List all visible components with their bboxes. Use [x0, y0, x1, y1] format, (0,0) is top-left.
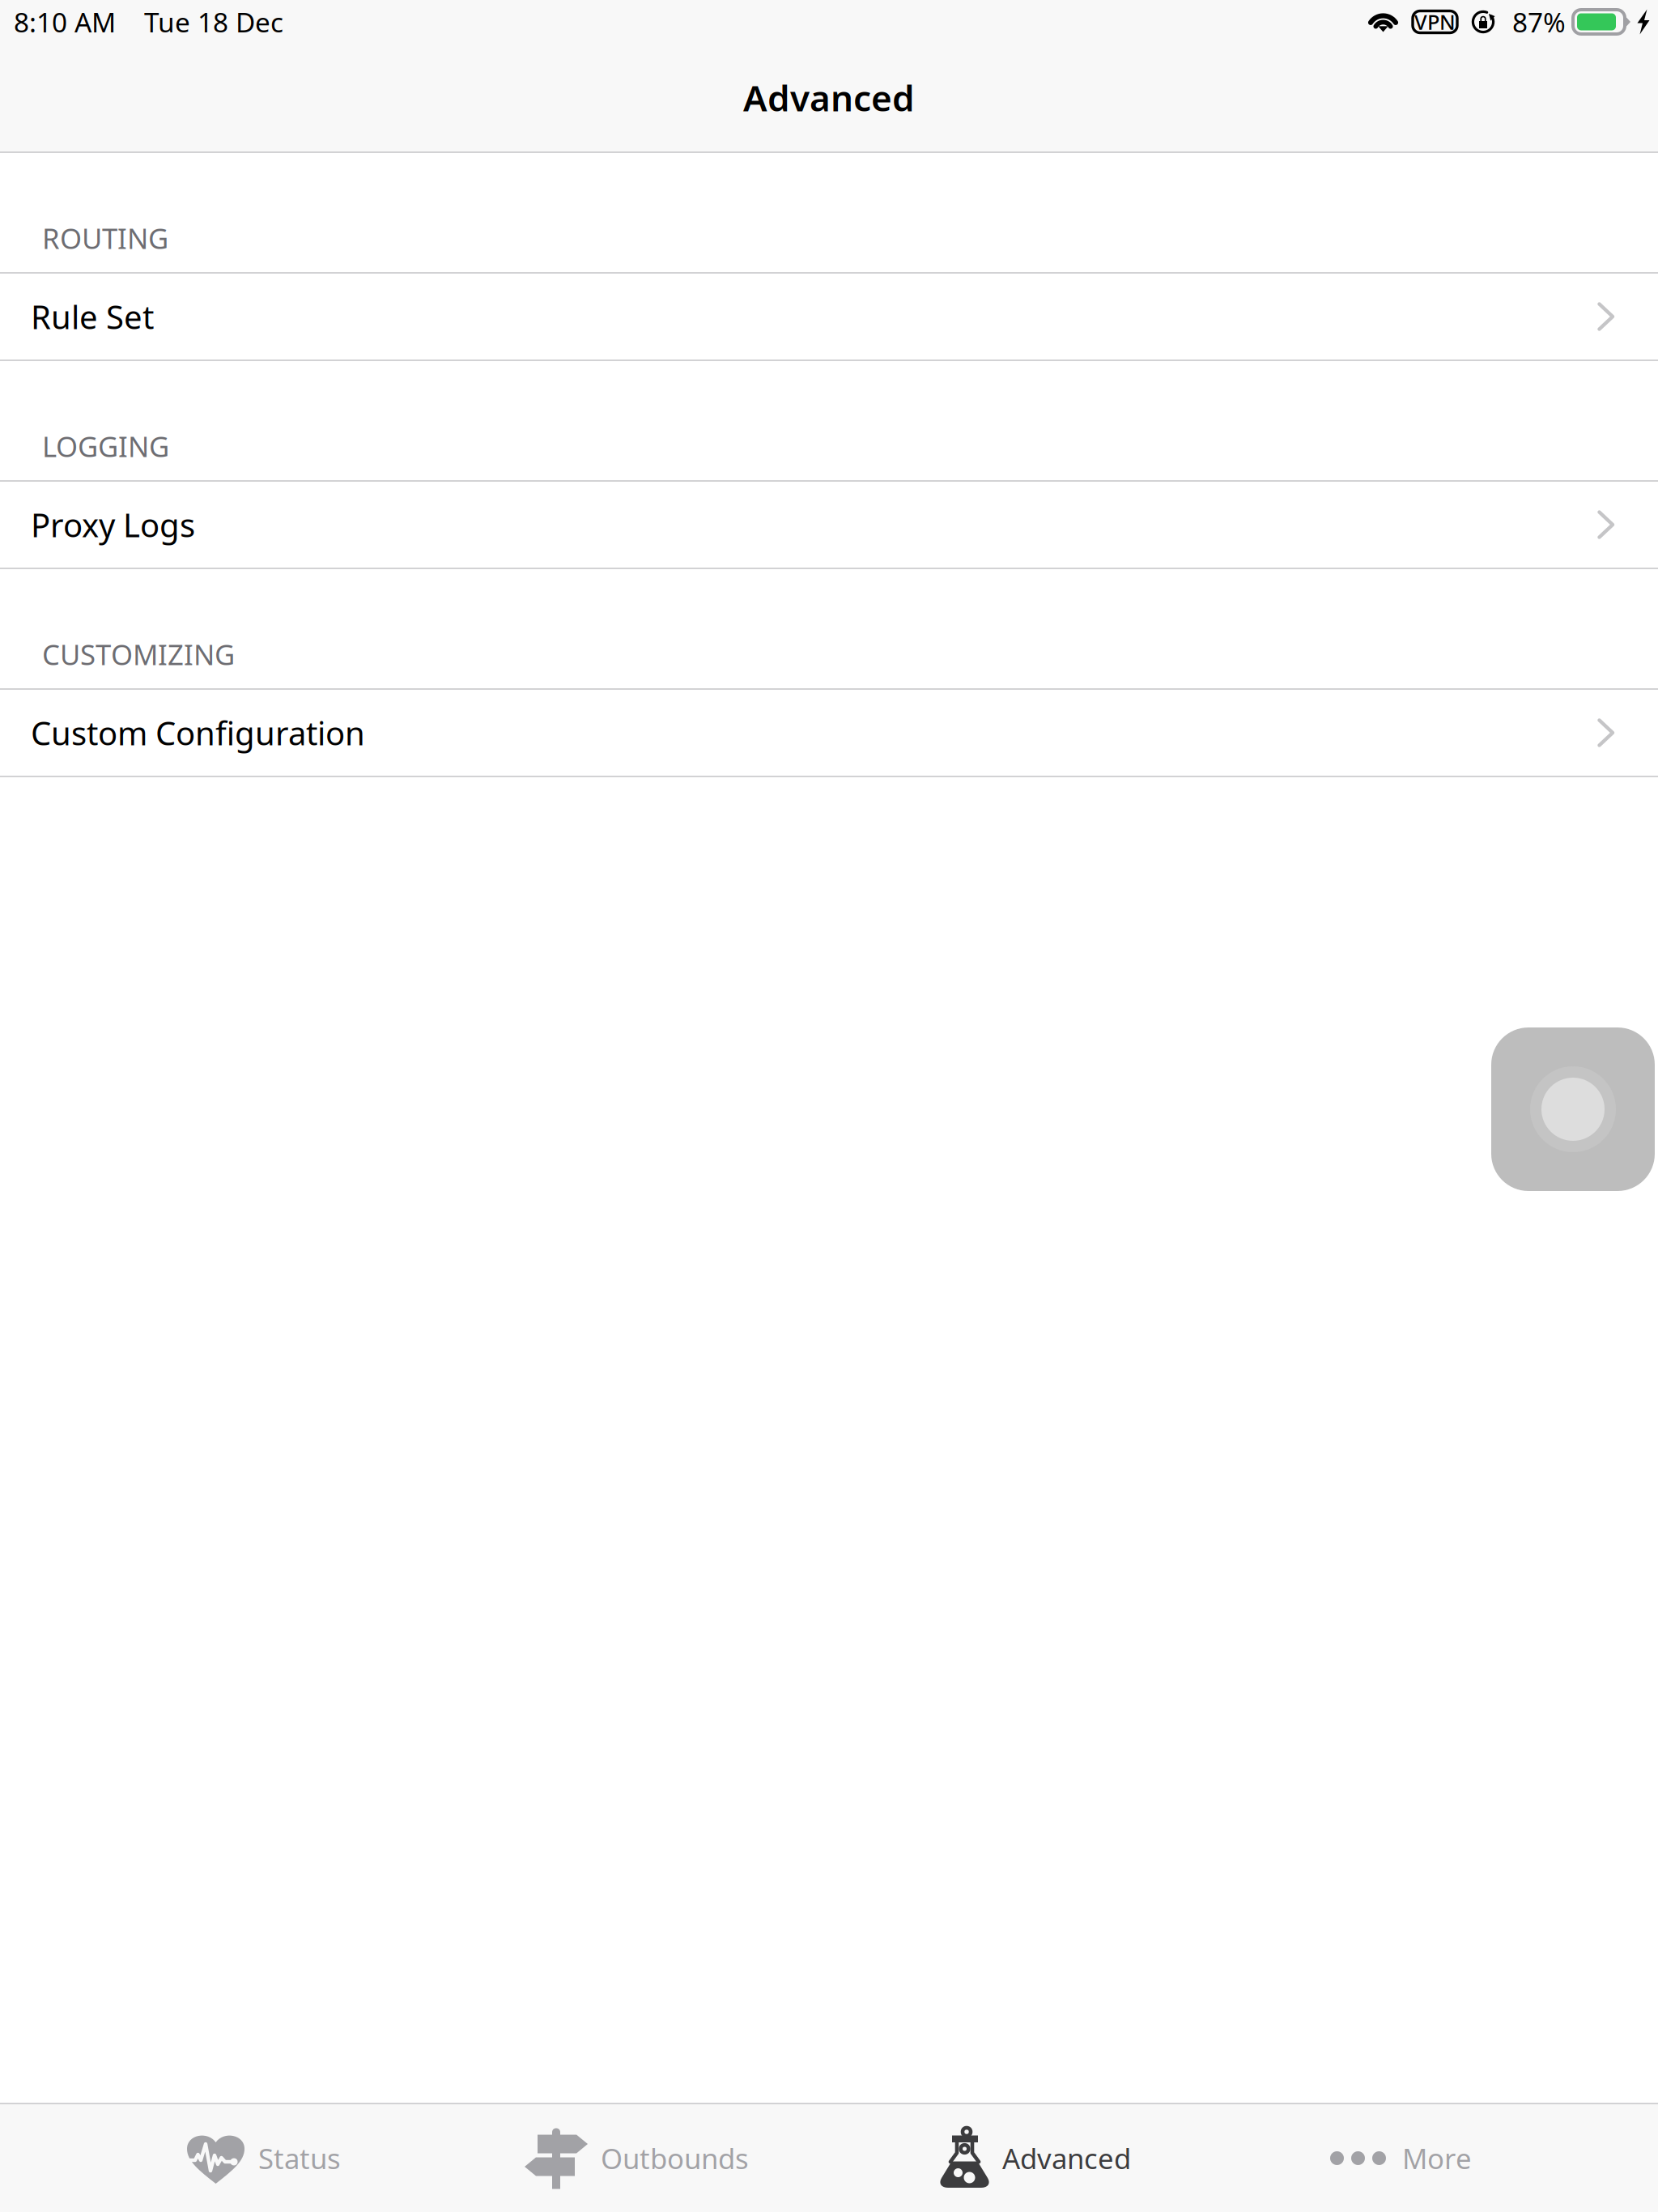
button[interactable]: Advanced	[940, 2104, 1131, 2212]
button[interactable]: More	[1330, 2104, 1472, 2212]
staticText: 87%	[1512, 4, 1566, 40]
staticText: Custom Configuration	[31, 711, 365, 754]
staticText: VPN	[1414, 8, 1456, 35]
staticText: Advanced	[743, 74, 915, 121]
staticText: CUSTOMIZING	[42, 636, 235, 673]
staticText: LOGGING	[42, 428, 169, 465]
button[interactable]: Outbounds	[525, 2104, 749, 2212]
staticText: Status	[258, 2140, 341, 2177]
staticText: 8:10 AM	[14, 4, 116, 40]
button[interactable]: AssistiveTouch	[1491, 1027, 1655, 1191]
button[interactable]: Status	[186, 2104, 341, 2212]
staticText: Rule Set	[31, 295, 154, 338]
button[interactable]: Custom Configuration	[0, 690, 1658, 776]
button[interactable]: Proxy Logs	[0, 482, 1658, 568]
staticText: Proxy Logs	[31, 503, 195, 546]
staticText: Advanced	[1002, 2140, 1131, 2177]
button[interactable]: Rule Set	[0, 274, 1658, 359]
staticText: More	[1402, 2140, 1472, 2177]
staticText: ROUTING	[42, 219, 168, 257]
staticText: Tue 18 Dec	[144, 4, 283, 40]
staticText: Outbounds	[601, 2140, 749, 2177]
